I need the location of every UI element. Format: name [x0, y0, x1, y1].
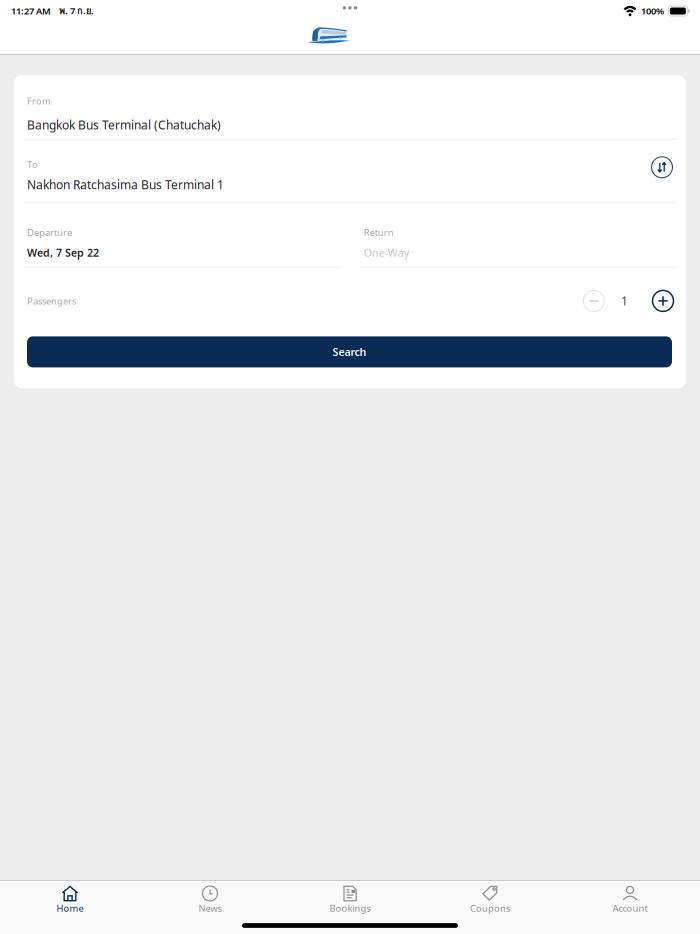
staticText: One-Way: [364, 246, 409, 260]
staticText: Wed, 7 Sep 22: [27, 246, 99, 260]
staticText: To: [27, 158, 38, 171]
staticText: Return: [364, 226, 394, 239]
staticText: Search: [332, 345, 366, 359]
staticText: Account: [612, 902, 647, 914]
button[interactable]: Increase passengers: [649, 287, 676, 314]
button[interactable]: Departure: [23, 203, 339, 267]
staticText: News: [198, 902, 221, 914]
staticText: 100%: [641, 5, 664, 17]
staticText: Bangkok Bus Terminal (Chatuchak): [27, 117, 221, 133]
staticText: Passengers: [27, 295, 76, 307]
staticText: Departure: [27, 226, 72, 239]
staticText: Bookings: [329, 902, 370, 914]
staticText: Nakhon Ratchasima Bus Terminal 1: [27, 177, 224, 193]
button[interactable]: Decrease passengers: [580, 287, 607, 314]
button[interactable]: Swap origin and destination: [649, 154, 675, 180]
staticText: 11:27 AM: [11, 5, 51, 17]
button[interactable]: News: [140, 880, 280, 934]
button[interactable]: Bookings: [280, 880, 420, 934]
button[interactable]: From: [14, 75, 686, 140]
staticText: พ. 7 ก.ย.: [59, 4, 94, 18]
staticText: Home: [56, 902, 83, 914]
button[interactable]: To: [14, 140, 686, 203]
staticText: Coupons: [470, 902, 510, 914]
button[interactable]: Coupons: [420, 880, 560, 934]
button[interactable]: Return: [360, 203, 676, 267]
staticText: 1: [621, 293, 628, 309]
button[interactable]: Account: [560, 880, 700, 934]
button[interactable]: Search: [27, 336, 672, 367]
staticText: From: [27, 95, 51, 107]
button[interactable]: Home: [0, 880, 140, 934]
